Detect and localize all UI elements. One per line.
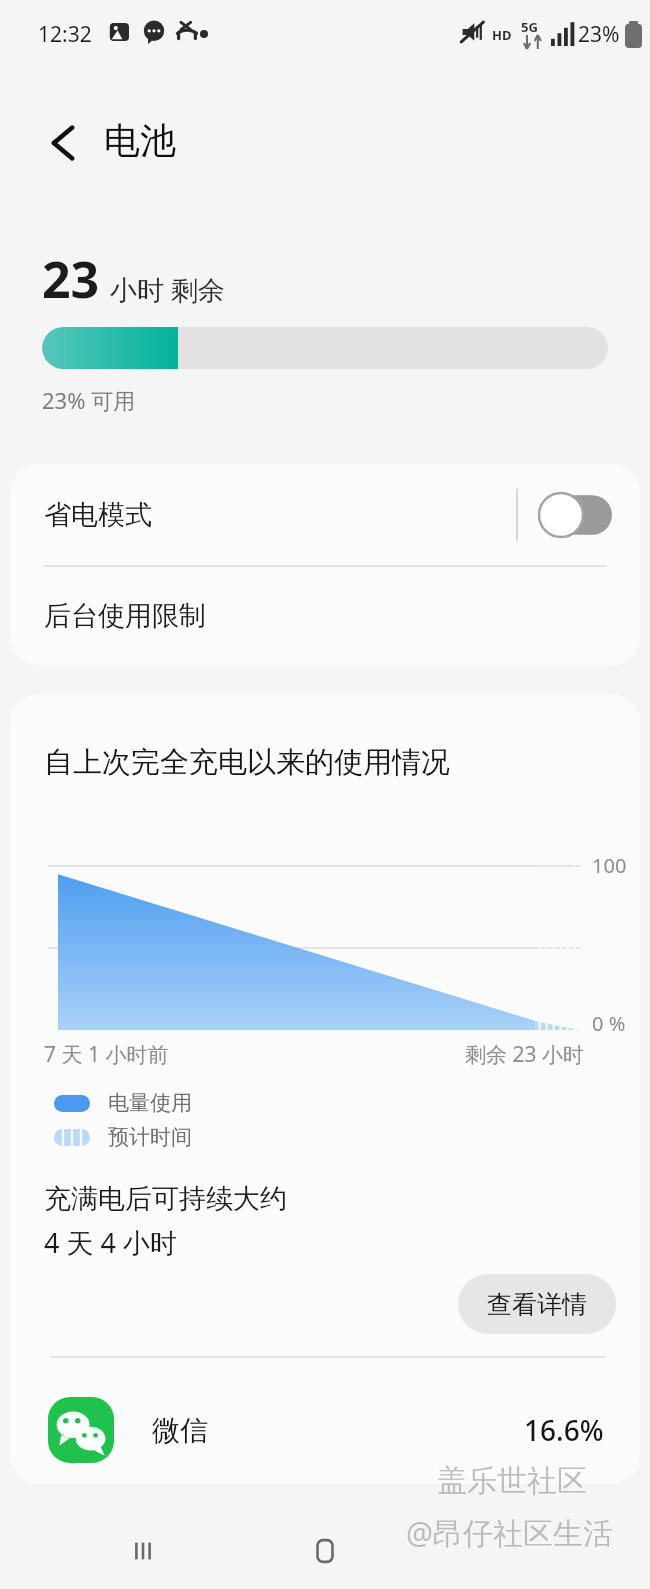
button[interactable]: Back — [24, 108, 94, 178]
staticText: 盖乐世社区 — [437, 1462, 587, 1500]
button[interactable]: Recents — [108, 1516, 178, 1586]
staticText: 7 天 1 小时前 — [44, 1040, 169, 1069]
staticText: 0 % — [592, 1010, 626, 1037]
staticText: 23 — [42, 245, 100, 313]
staticText: HD — [492, 26, 512, 44]
staticText: 查看详情 — [487, 1289, 587, 1320]
button[interactable]: Power saving toggle — [538, 492, 612, 538]
staticText: 预计时间 — [108, 1124, 192, 1150]
staticText: 省电模式 — [44, 498, 152, 532]
staticText: 微信 — [152, 1413, 208, 1448]
staticText: 16.6% — [524, 1411, 604, 1449]
staticText: 电池 — [104, 118, 176, 163]
staticText: 100 — [592, 852, 627, 879]
staticText: 23% 可用 — [42, 385, 136, 415]
staticText: 小时 剩余 — [110, 271, 226, 308]
button[interactable]: 省电模式 — [10, 464, 640, 565]
staticText: 后台使用限制 — [44, 599, 206, 633]
staticText: 充满电后可持续大约 — [44, 1182, 287, 1216]
staticText: 4 天 4 小时 — [44, 1224, 177, 1261]
staticText: 23% — [578, 20, 620, 49]
button[interactable]: 查看详情 — [458, 1274, 616, 1334]
button[interactable]: 微信 — [10, 1380, 640, 1480]
staticText: @昂仔社区生活 — [406, 1512, 613, 1553]
staticText: 电量使用 — [108, 1090, 192, 1116]
staticText: 5G — [521, 18, 538, 36]
button[interactable]: 后台使用限制 — [10, 565, 640, 666]
staticText: 自上次完全充电以来的使用情况 — [44, 744, 450, 781]
staticText: 12:32 — [38, 20, 92, 49]
button[interactable]: Home — [290, 1516, 360, 1586]
staticText: 剩余 23 小时 — [465, 1040, 584, 1069]
